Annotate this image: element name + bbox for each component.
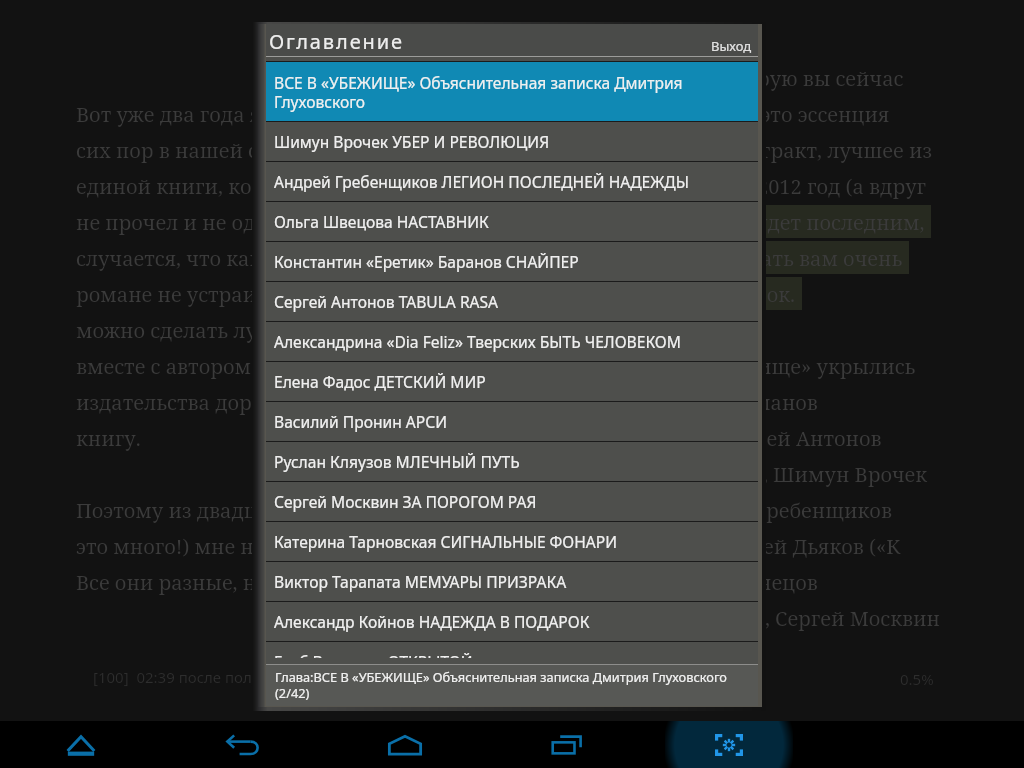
button[interactable]: Константин «Еретик» Баранов СНАЙПЕР bbox=[266, 242, 758, 281]
button[interactable]: Сергей Москвин ЗА ПОРОГОМ РАЯ bbox=[266, 482, 758, 521]
button[interactable]: Александр Койнов НАДЕЖДА В ПОДАРОК bbox=[266, 602, 758, 641]
staticText: вместе с автором и bbox=[76, 353, 270, 380]
button[interactable]: Шимун Врочек УБЕР И РЕВОЛЮЦИЯ bbox=[266, 122, 758, 161]
button[interactable]: Screen brightness bbox=[699, 721, 759, 768]
staticText: ать вам очень bbox=[761, 245, 903, 272]
button[interactable]: Back bbox=[213, 721, 273, 768]
staticText: 0.5% bbox=[900, 669, 934, 689]
button[interactable]: Menu bbox=[51, 721, 111, 768]
staticText: Сергей Москвин ЗА ПОРОГОМ РАЯ bbox=[274, 491, 537, 512]
staticText: Катерина Тарновская СИГНАЛЬНЫЕ ФОНАРИ bbox=[274, 531, 617, 552]
button[interactable]: Home bbox=[375, 721, 435, 768]
staticText: удет последним, bbox=[756, 209, 925, 236]
button[interactable]: Recent apps bbox=[537, 721, 597, 768]
staticText: ), Сергей Москвин bbox=[758, 605, 940, 632]
staticText: гей Антонов bbox=[757, 425, 882, 452]
staticText: случается, что каки bbox=[76, 245, 275, 272]
staticText: это много!) мне не bbox=[76, 533, 265, 560]
staticText: Глава:ВСЕ В «УБЕЖИЩЕ» Объяснительная зап… bbox=[275, 668, 727, 701]
staticText: 2012 год (а вдруг bbox=[757, 173, 927, 200]
staticText: книгу. bbox=[76, 425, 141, 452]
staticText: Поэтому из двадцат bbox=[76, 497, 279, 524]
staticText: Сергей Антонов TABULA RASA bbox=[274, 291, 499, 312]
staticText: Шимун Врочек УБЕР И РЕВОЛЮЦИЯ bbox=[274, 131, 550, 152]
staticText: Елена Фадос ДЕТСКИЙ МИР bbox=[274, 371, 486, 392]
button[interactable]: Виктор Тарапата МЕМУАРЫ ПРИЗРАКА bbox=[266, 562, 758, 601]
staticText: Константин «Еретик» Баранов СНАЙПЕР bbox=[274, 251, 579, 272]
staticText: ), Шимун Врочек bbox=[756, 461, 928, 488]
staticText: Выход bbox=[711, 37, 752, 55]
staticText: Оглавление bbox=[269, 28, 404, 55]
button[interactable]: Андрей Гребенщиков ЛЕГИОН ПОСЛЕДНЕЙ НАДЕ… bbox=[266, 162, 758, 201]
button[interactable]: Александрина «Dia Feliz» Тверских БЫТЬ Ч… bbox=[266, 322, 758, 361]
button[interactable]: Елена Фадос ДЕТСКИЙ МИР bbox=[266, 362, 758, 401]
staticText: романе не устраива bbox=[76, 281, 279, 308]
button[interactable]: Ольга Швецова НАСТАВНИК bbox=[266, 202, 758, 241]
staticText: Александр Койнов НАДЕЖДА В ПОДАРОК bbox=[274, 611, 590, 632]
staticText: манов bbox=[754, 389, 818, 416]
button[interactable]: Глеб Васильев ОТКРЫТОЙ bbox=[266, 642, 758, 658]
staticText: ВСЕ В «УБЕЖИЩЕ» Объяснительная записка Д… bbox=[274, 72, 749, 112]
button[interactable]: ВСЕ В «УБЕЖИЩЕ» Объяснительная записка Д… bbox=[266, 62, 758, 121]
staticText: Руслан Кляузов МЛЕЧНЫЙ ПУТЬ bbox=[274, 451, 520, 472]
staticText: рок. bbox=[754, 281, 796, 308]
staticText: Глеб Васильев ОТКРЫТОЙ bbox=[274, 651, 473, 658]
staticText: стракт, лучшее из bbox=[750, 137, 932, 164]
staticText: Вот уже два года я bbox=[76, 101, 262, 128]
staticText: единой книги, кото bbox=[76, 173, 274, 200]
button[interactable]: Руслан Кляузов МЛЕЧНЫЙ ПУТЬ bbox=[266, 442, 758, 481]
staticText: - это эссенция bbox=[749, 101, 890, 128]
button[interactable]: Выход bbox=[701, 33, 758, 56]
staticText: Все они разные, но bbox=[76, 569, 268, 596]
staticText: [100] 02:39 после полудня bbox=[93, 667, 286, 687]
staticText: Александрина «Dia Feliz» Тверских БЫТЬ Ч… bbox=[274, 331, 681, 352]
button[interactable]: Катерина Тарновская СИГНАЛЬНЫЕ ФОНАРИ bbox=[266, 522, 758, 561]
staticText: ребенщиков bbox=[766, 497, 892, 524]
staticText: рую вы сейчас bbox=[757, 65, 904, 92]
staticText: ей Дьяков («К bbox=[763, 533, 901, 560]
staticText: ище» укрылись bbox=[758, 353, 916, 380]
staticText: Василий Пронин АРСИ bbox=[274, 411, 447, 432]
staticText: Ольга Швецова НАСТАВНИК bbox=[274, 211, 489, 232]
staticText: сих пор в нашей се bbox=[76, 137, 269, 164]
button[interactable]: Сергей Антонов TABULA RASA bbox=[266, 282, 758, 321]
staticText: можно сделать луч bbox=[76, 317, 270, 344]
staticText: Виктор Тарапата МЕМУАРЫ ПРИЗРАКА bbox=[274, 571, 567, 592]
staticText: нецов bbox=[758, 569, 818, 596]
staticText: Андрей Гребенщиков ЛЕГИОН ПОСЛЕДНЕЙ НАДЕ… bbox=[274, 171, 689, 192]
staticText: издательства дораб bbox=[76, 389, 275, 416]
button[interactable]: Василий Пронин АРСИ bbox=[266, 402, 758, 441]
staticText: не прочел и не одо bbox=[76, 209, 268, 236]
